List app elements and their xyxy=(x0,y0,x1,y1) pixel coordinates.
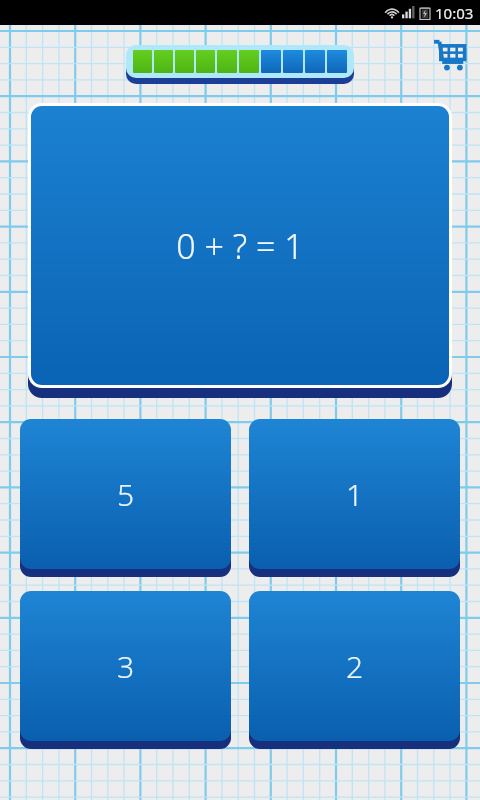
staticText: 10:03 xyxy=(435,3,474,23)
staticText: 5 xyxy=(117,474,135,515)
button[interactable]: 2 xyxy=(249,591,460,741)
staticText: 2 xyxy=(346,646,364,687)
button[interactable]: 3 xyxy=(20,591,231,741)
staticText: 1 xyxy=(346,474,364,515)
staticText: 0 + ? = 1 xyxy=(176,223,304,269)
button[interactable]: 5 xyxy=(20,419,231,569)
button[interactable]: 1 xyxy=(249,419,460,569)
staticText: 3 xyxy=(117,646,135,687)
button[interactable]: 0 + ? = 1 xyxy=(31,106,449,385)
button[interactable]: Shop xyxy=(426,31,472,77)
